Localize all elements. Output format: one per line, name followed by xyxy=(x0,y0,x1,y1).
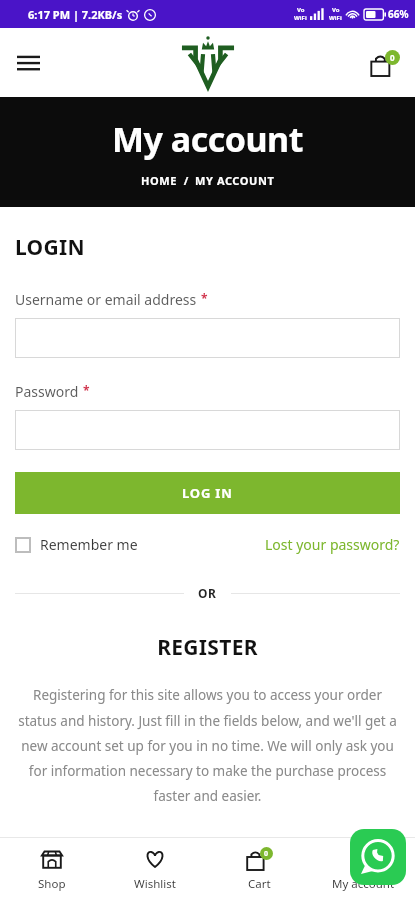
button[interactable]: My account xyxy=(311,838,415,900)
button[interactable]: Wishlist xyxy=(103,838,207,900)
staticText: REGISTER xyxy=(15,633,400,662)
staticText: LOG IN xyxy=(182,484,233,502)
staticText: My account xyxy=(332,876,395,892)
staticText: Username or email address xyxy=(15,290,197,309)
staticText: OR xyxy=(198,585,217,601)
staticText: Vo xyxy=(332,6,340,14)
staticText: Remember me xyxy=(40,535,138,554)
button[interactable]: HOME xyxy=(141,173,178,188)
button[interactable]: Menu xyxy=(6,41,50,85)
staticText: * xyxy=(83,382,90,398)
staticText: / xyxy=(178,173,195,188)
staticText: 0 xyxy=(390,52,395,63)
button[interactable]: Shop xyxy=(0,838,103,900)
staticText: * xyxy=(201,290,208,306)
staticText: Shop xyxy=(38,876,66,892)
button[interactable] xyxy=(15,410,400,450)
staticText: Registering for this site allows you to … xyxy=(15,686,400,805)
staticText: Cart xyxy=(248,876,271,892)
staticText: Wishlist xyxy=(134,876,176,892)
staticText: 66% xyxy=(388,7,409,21)
staticText: WiFi xyxy=(329,14,342,22)
button[interactable]: Lost your password? xyxy=(265,535,400,554)
staticText: My account xyxy=(112,116,303,162)
staticText: Vo xyxy=(297,6,305,14)
staticText: Password xyxy=(15,382,79,401)
staticText: LOGIN xyxy=(15,233,85,262)
button[interactable]: LOG IN xyxy=(15,472,400,514)
button[interactable]: Cart xyxy=(363,41,407,85)
button[interactable] xyxy=(15,318,400,358)
button[interactable]: Chat on WhatsApp xyxy=(350,829,406,885)
button[interactable]: 0 xyxy=(207,838,311,900)
button[interactable]: Remember me xyxy=(15,535,138,554)
staticText: 6:17 PM | 7.2KB/s xyxy=(28,7,123,22)
staticText: WiFi xyxy=(294,14,307,22)
staticText: MY ACCOUNT xyxy=(195,173,275,188)
staticText: 0 xyxy=(264,849,269,859)
